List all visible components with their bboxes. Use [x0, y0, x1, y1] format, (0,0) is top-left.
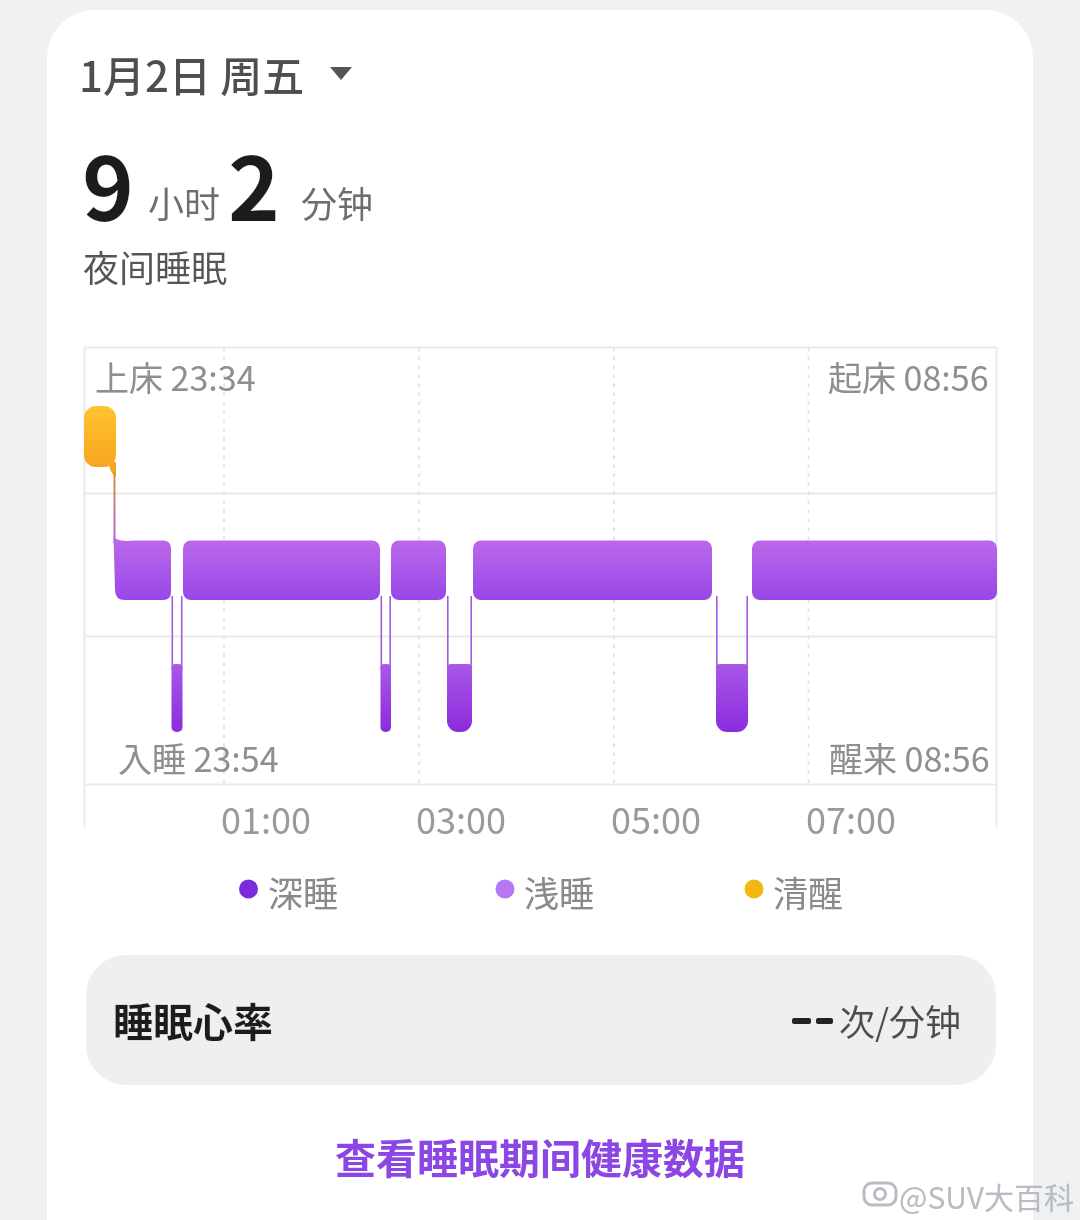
staticText: 睡眠心率 [113, 991, 273, 1049]
staticText: 入睡 23:54 [118, 733, 279, 782]
staticText: 醒来 08:56 [829, 733, 990, 782]
staticText: 05:00 [611, 792, 701, 844]
staticText: 上床 23:34 [95, 352, 256, 401]
staticText: 浅睡 [524, 866, 595, 917]
button[interactable]: 查看睡眠期间健康数据 [0, 1126, 1080, 1185]
staticText: 夜间睡眠 [83, 240, 228, 292]
staticText: 起床 08:56 [828, 352, 989, 401]
staticText: 查看睡眠期间健康数据 [335, 1126, 745, 1185]
staticText: 2 [228, 119, 280, 246]
staticText: 深睡 [268, 866, 339, 917]
staticText: 清醒 [773, 866, 844, 917]
staticText: 9 [82, 119, 134, 246]
staticText: 07:00 [806, 792, 896, 844]
staticText: @SUV大百科 [899, 1174, 1075, 1217]
staticText: 小时 [148, 176, 221, 228]
staticText: 分钟 [301, 176, 374, 228]
button[interactable]: 1月2日 周五 [79, 43, 305, 104]
staticText: 次/分钟 [839, 994, 962, 1046]
staticText: 01:00 [221, 792, 311, 844]
staticText: 03:00 [416, 792, 506, 844]
button[interactable]: 睡眠心率 [86, 955, 996, 1085]
staticText: 1月2日 周五 [79, 43, 305, 104]
